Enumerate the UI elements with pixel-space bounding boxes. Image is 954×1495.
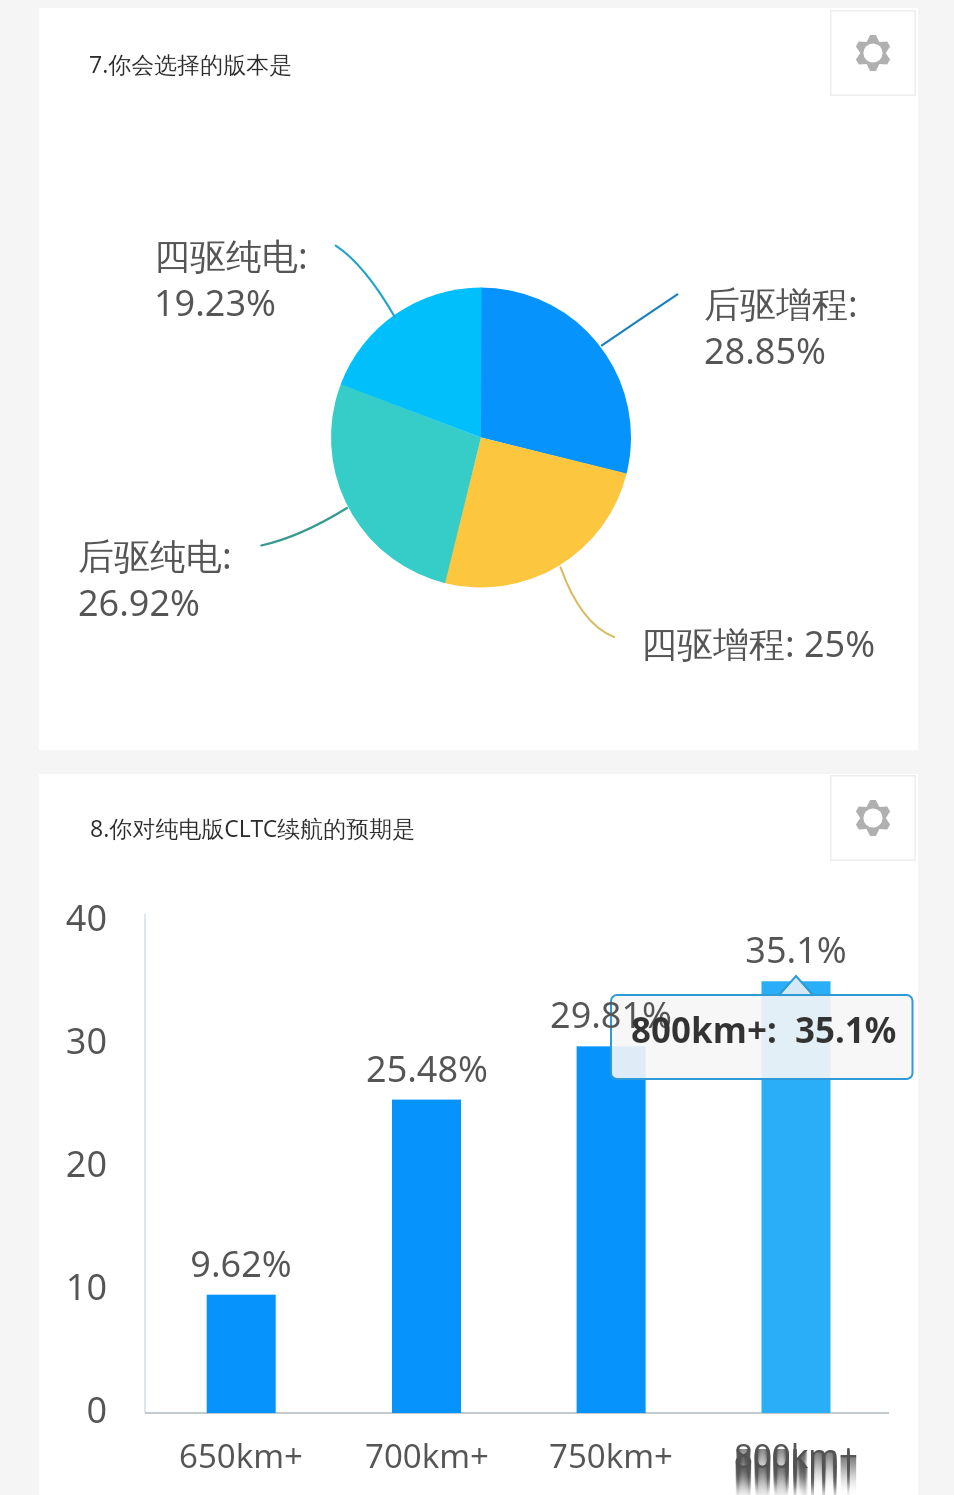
staticText: 40 bbox=[30, 893, 107, 942]
staticText: 800km+ bbox=[676, 1449, 916, 1488]
staticText: 800km+ bbox=[676, 1467, 916, 1495]
staticText: 800km+ bbox=[676, 1461, 916, 1495]
staticText: 800km+ bbox=[676, 1454, 916, 1495]
staticText: 800km+ bbox=[676, 1450, 916, 1495]
staticText: 800km+ bbox=[676, 1472, 916, 1495]
staticText: 700km+ bbox=[307, 1433, 547, 1478]
staticText: 800km+ bbox=[676, 1452, 916, 1495]
staticText: 35.1% bbox=[676, 925, 916, 974]
staticText: 800km+ bbox=[676, 1466, 916, 1495]
staticText: 10 bbox=[30, 1262, 107, 1311]
staticText: 800km+ bbox=[676, 1449, 916, 1489]
staticText: 800km+ bbox=[676, 1460, 916, 1495]
staticText: 800km+ bbox=[676, 1468, 916, 1495]
staticText: 800km+: 35.1% bbox=[631, 1006, 897, 1054]
staticText: 800km+ bbox=[676, 1449, 916, 1487]
staticText: 800km+ bbox=[676, 1449, 916, 1478]
staticText: 30 bbox=[30, 1016, 107, 1065]
staticText: 800km+ bbox=[676, 1451, 916, 1495]
staticText: 800km+ bbox=[676, 1470, 916, 1495]
staticText: 800km+ bbox=[676, 1463, 916, 1495]
staticText: 800km+ bbox=[676, 1462, 916, 1495]
staticText: 0 bbox=[30, 1385, 107, 1434]
staticText: 800km+ bbox=[676, 1459, 916, 1495]
staticText: 800km+ bbox=[676, 1449, 916, 1480]
staticText: 800km+ bbox=[676, 1471, 916, 1495]
staticText: 9.62% bbox=[121, 1239, 361, 1288]
staticText: 800km+ bbox=[676, 1457, 916, 1495]
staticText: 800km+ bbox=[676, 1449, 916, 1481]
staticText: 800km+ bbox=[676, 1464, 916, 1495]
staticText: 800km+ bbox=[676, 1449, 916, 1479]
staticText: 800km+ bbox=[676, 1433, 916, 1478]
staticText: 25.48% bbox=[307, 1044, 547, 1093]
staticText: 四驱纯电: 19.23% bbox=[154, 231, 308, 327]
button[interactable]: Settings bbox=[830, 10, 916, 96]
staticText: 后驱增程: 28.85% bbox=[704, 279, 858, 375]
staticText: 650km+ bbox=[121, 1433, 361, 1478]
staticText: 800km+ bbox=[676, 1449, 916, 1486]
staticText: 800km+ bbox=[676, 1465, 916, 1495]
staticText: 7.你会选择的版本是 bbox=[89, 48, 293, 79]
staticText: 800km+ bbox=[676, 1449, 916, 1490]
staticText: 8.你对纯电版CLTC续航的预期是 bbox=[90, 812, 416, 843]
staticText: 800km+ bbox=[676, 1449, 916, 1485]
staticText: 20 bbox=[30, 1139, 107, 1188]
staticText: 四驱增程: 25% bbox=[641, 619, 876, 668]
staticText: 800km+ bbox=[676, 1449, 916, 1494]
staticText: 800km+ bbox=[676, 1456, 916, 1495]
staticText: 800km+ bbox=[676, 1453, 916, 1495]
staticText: 800km+ bbox=[676, 1455, 916, 1495]
staticText: 29.81% bbox=[491, 990, 731, 1039]
staticText: 800km+ bbox=[676, 1449, 916, 1493]
staticText: 800km+ bbox=[676, 1449, 916, 1482]
staticText: 后驱纯电: 26.92% bbox=[78, 531, 232, 627]
staticText: 800km+ bbox=[676, 1458, 916, 1495]
button[interactable]: Settings bbox=[830, 775, 916, 861]
staticText: 800km+ bbox=[676, 1449, 916, 1492]
staticText: 800km+ bbox=[676, 1469, 916, 1495]
staticText: 800km+ bbox=[676, 1449, 916, 1491]
staticText: 800km+ bbox=[676, 1449, 916, 1483]
staticText: 750km+ bbox=[491, 1433, 731, 1478]
staticText: 800km+ bbox=[676, 1449, 916, 1484]
